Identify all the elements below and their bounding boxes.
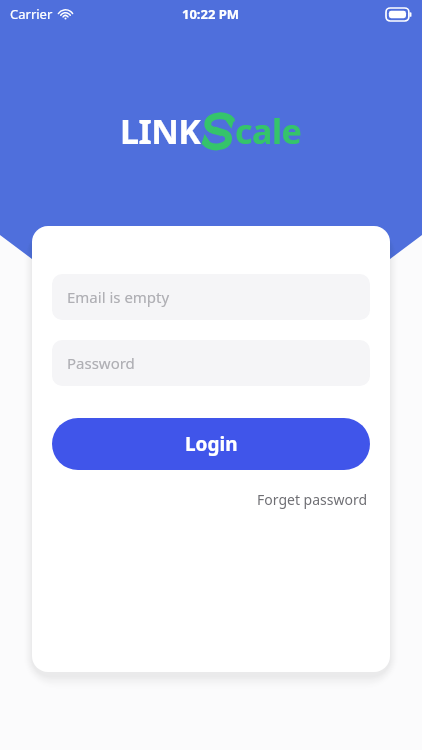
staticText: 10:22 PM	[182, 5, 240, 23]
button[interactable]: Forget password	[255, 486, 370, 513]
button[interactable]: Email is empty	[52, 274, 370, 320]
staticText: LINK	[120, 108, 201, 154]
button[interactable]: Password	[52, 340, 370, 386]
staticText: Login	[185, 431, 238, 457]
staticText: cale	[235, 108, 302, 154]
staticText: Forget password	[257, 490, 368, 509]
staticText: Password	[67, 353, 135, 373]
staticText: Carrier	[10, 5, 53, 23]
staticText: Email is empty	[67, 287, 170, 307]
button[interactable]: Login	[52, 418, 370, 470]
